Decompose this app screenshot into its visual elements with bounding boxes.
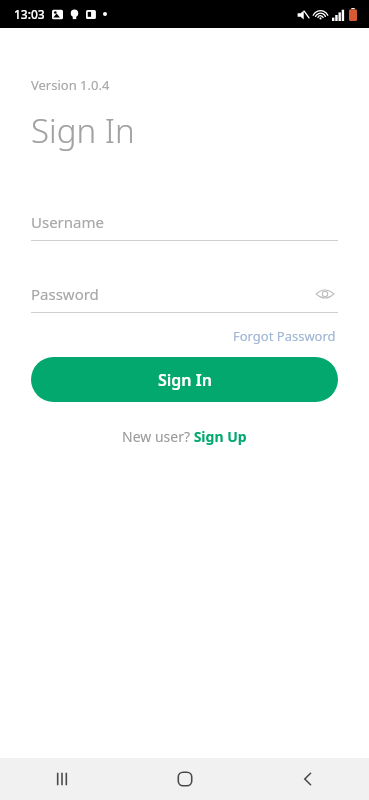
button[interactable]: New user? Sign Up (118, 424, 251, 449)
button[interactable]: Show password (312, 281, 338, 307)
staticText: 13:03 (14, 6, 45, 22)
staticText: Sign In (158, 369, 212, 391)
button[interactable]: Sign In (31, 357, 338, 402)
staticText: Forgot Password (233, 327, 336, 345)
button[interactable]: Back (246, 758, 369, 800)
staticText: Password (31, 284, 312, 304)
button[interactable]: Recent apps (0, 758, 123, 800)
staticText: Username (31, 212, 338, 232)
button[interactable]: Home (123, 758, 246, 800)
button[interactable]: Forgot Password (231, 325, 338, 347)
staticText: Version 1.0.4 (31, 76, 110, 94)
staticText: New user? Sign Up (122, 427, 247, 446)
staticText: Sign In (31, 108, 135, 153)
